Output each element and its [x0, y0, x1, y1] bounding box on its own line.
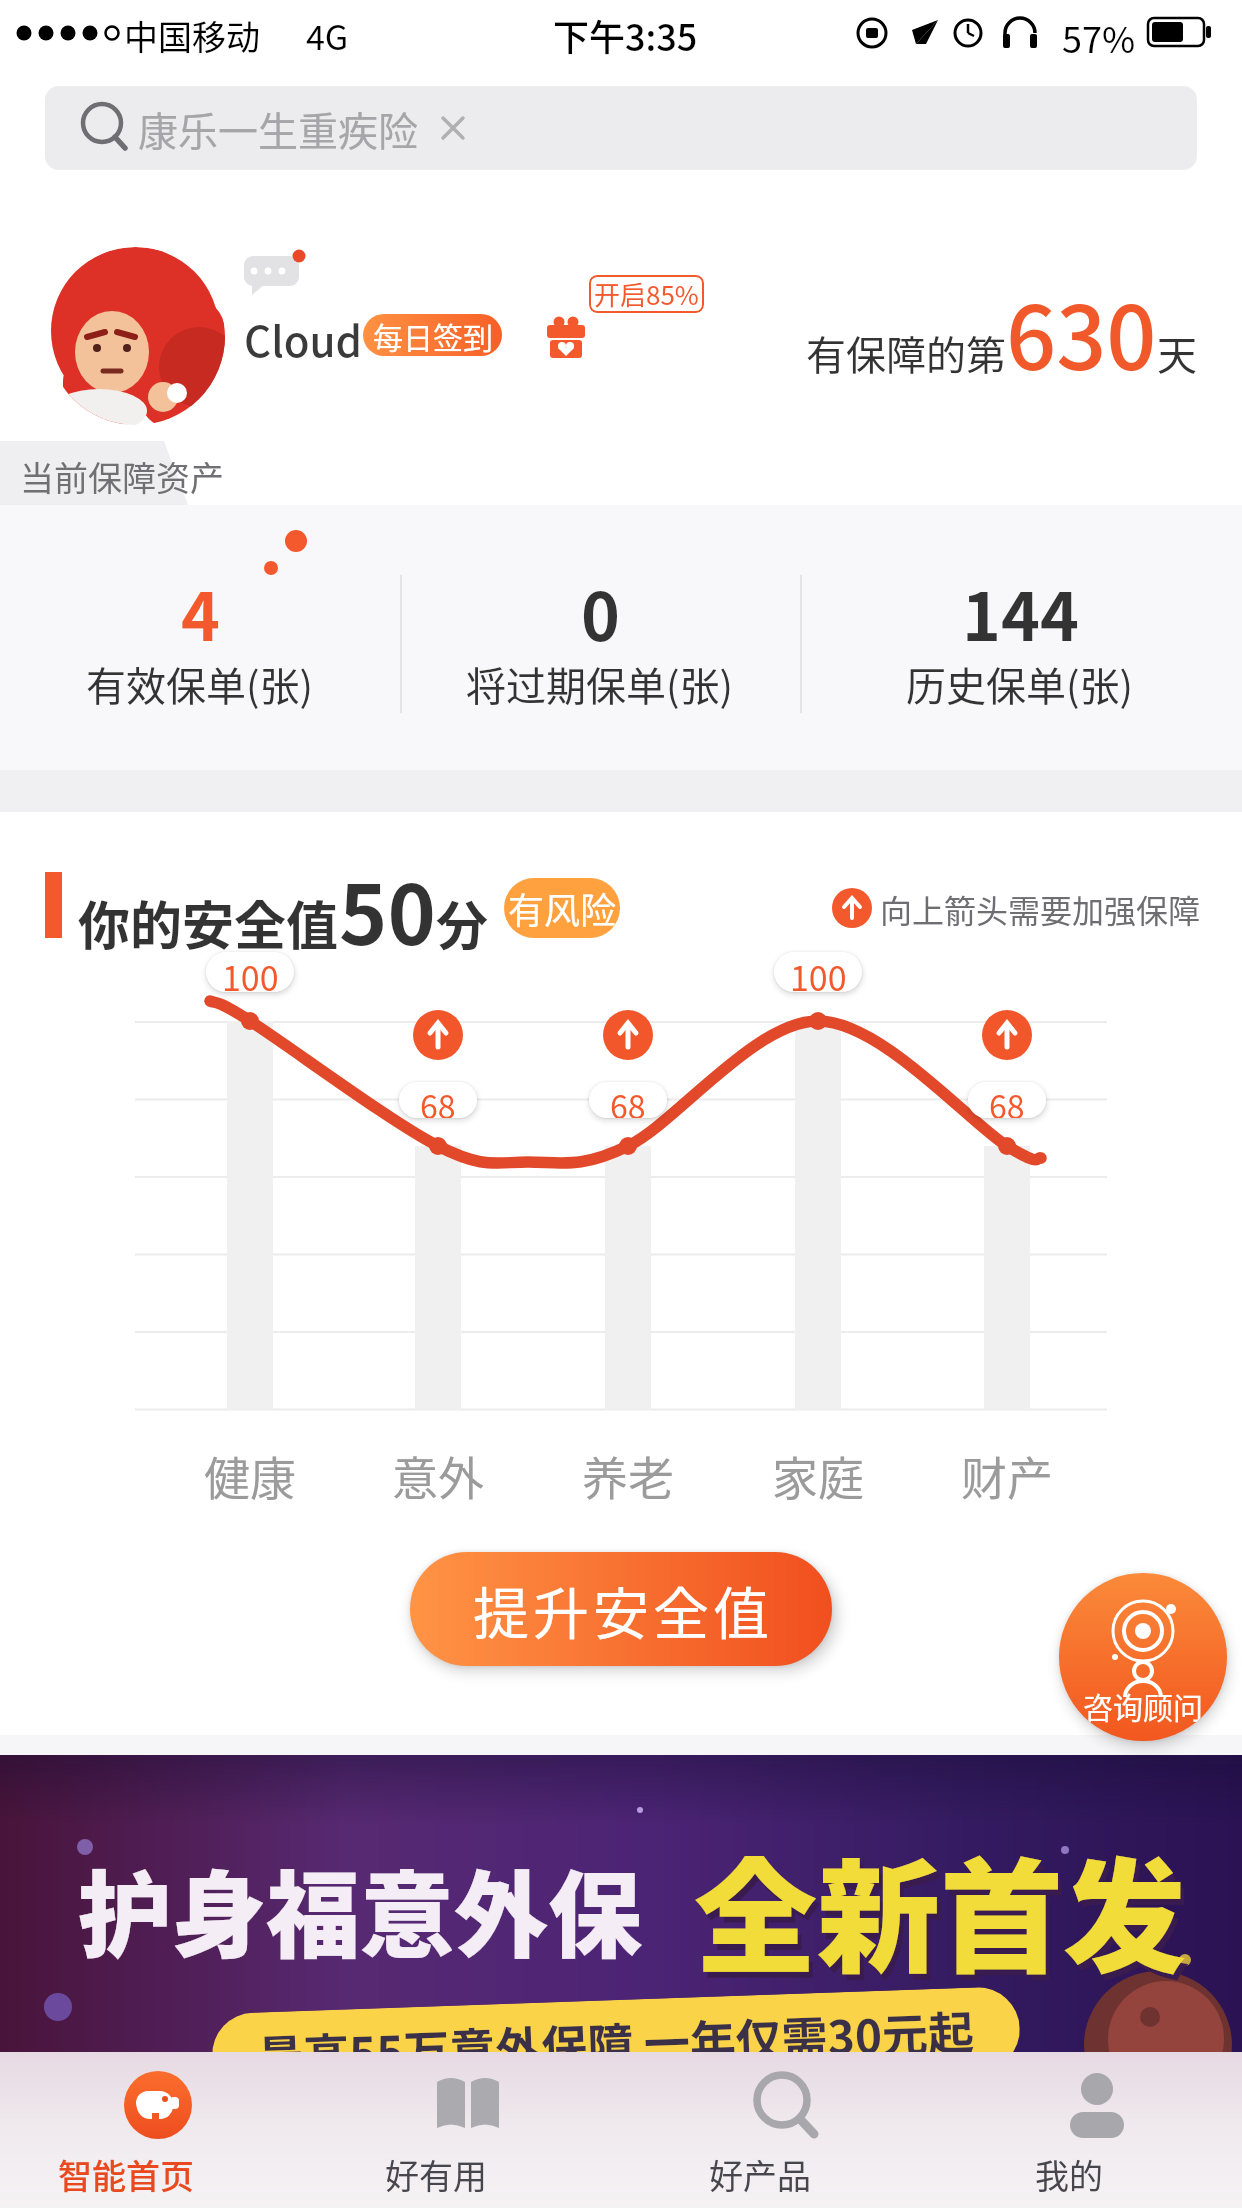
staticText: 你的安全值: [78, 885, 339, 960]
staticText: 向上箭头需要加强保障: [880, 886, 1201, 932]
staticText: 将过期保单(张): [466, 655, 734, 713]
staticText: 历史保单(张): [906, 655, 1134, 713]
button[interactable]: 康乐一生重疾险: [45, 86, 1197, 170]
staticText: 每日签到: [373, 314, 493, 356]
staticText: 智能首页: [58, 2150, 194, 2199]
staticText: 分: [436, 885, 489, 960]
staticText: 家庭: [772, 1442, 864, 1509]
staticText: 天: [1157, 324, 1197, 382]
staticText: 有效保单(张): [86, 655, 314, 713]
staticText: 68: [610, 1082, 646, 1118]
staticText: 下午3:35: [553, 9, 698, 61]
staticText: 提升安全值: [471, 1569, 771, 1650]
staticText: 好有用: [385, 2150, 487, 2199]
staticText: 68: [420, 1082, 456, 1118]
staticText: 4G: [306, 11, 349, 60]
staticText: 630: [1006, 268, 1157, 395]
button[interactable]: 咨询顾问: [1059, 1573, 1227, 1741]
staticText: 全新首发: [698, 1825, 1190, 2003]
staticText: 有保障的第: [806, 324, 1006, 382]
staticText: 健康: [204, 1442, 296, 1509]
staticText: 开启85%: [594, 275, 699, 313]
button[interactable]: [47, 247, 225, 425]
button[interactable]: 好产品: [660, 2052, 910, 2208]
button[interactable]: 好有用: [350, 2052, 586, 2208]
staticText: 护身福意外保: [78, 1841, 643, 1977]
staticText: 最高55万意外保障 一年仅需30元起: [256, 1996, 976, 2088]
staticText: 全新首发: [694, 1819, 1186, 1997]
staticText: 100: [790, 952, 847, 992]
button[interactable]: 智能首页: [40, 2052, 276, 2208]
staticText: 康乐一生重疾险: [138, 100, 418, 158]
button[interactable]: 我的: [975, 2052, 1219, 2208]
staticText: 100: [222, 952, 279, 992]
staticText: 57%: [1062, 11, 1136, 63]
staticText: 财产: [961, 1442, 1053, 1509]
button[interactable]: 提升安全值: [410, 1552, 832, 1666]
button[interactable]: 每日签到: [363, 314, 502, 356]
staticText: 当前保障资产: [20, 452, 224, 501]
staticText: 有风险: [508, 882, 617, 934]
staticText: Cloud: [244, 308, 362, 369]
staticText: 中国移动: [124, 11, 260, 60]
staticText: 咨询顾问: [1083, 1684, 1203, 1727]
staticText: 好产品: [709, 2150, 811, 2199]
button[interactable]: 护身福意外保: [0, 1755, 1242, 2052]
staticText: 养老: [582, 1442, 674, 1509]
staticText: 68: [989, 1082, 1025, 1118]
staticText: 意外: [392, 1442, 484, 1509]
staticText: 我的: [1035, 2150, 1103, 2199]
staticText: 50: [339, 850, 436, 950]
staticText: 144: [962, 564, 1079, 660]
staticText: 4: [181, 564, 220, 660]
staticText: 0: [581, 564, 620, 660]
